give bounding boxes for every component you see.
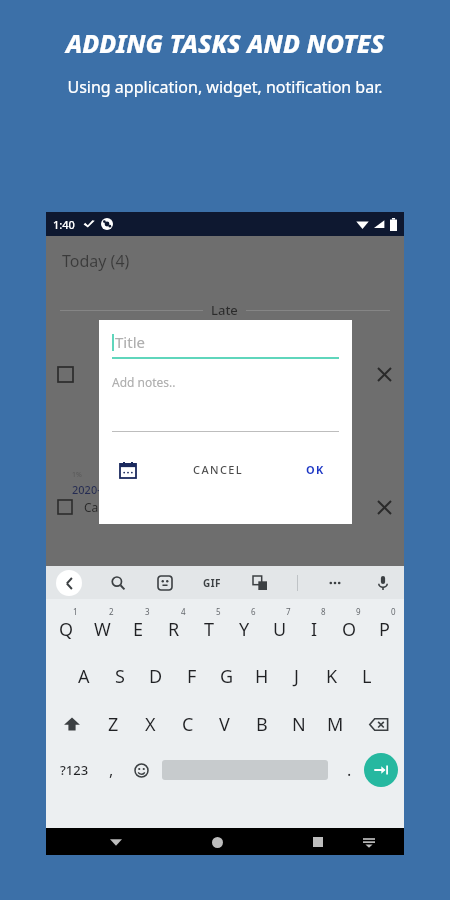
button[interactable]: Translate [249, 572, 271, 594]
staticText: Today (4) [62, 250, 130, 272]
button[interactable]: S [102, 655, 138, 697]
button[interactable]: A [66, 655, 102, 697]
staticText: N [292, 712, 306, 737]
button[interactable]: X [132, 703, 169, 745]
button[interactable]: . [336, 749, 362, 791]
staticText: GIF [203, 576, 221, 590]
button[interactable]: E [120, 603, 156, 649]
button[interactable]: Q [48, 603, 84, 649]
staticText: ?123 [60, 761, 89, 779]
staticText: . [347, 759, 352, 781]
staticText: 3 [145, 606, 150, 617]
staticText: 7 [286, 606, 291, 617]
staticText: 2020-02-10 Mon 18:00 [72, 482, 187, 497]
staticText: 8 [321, 606, 326, 617]
button[interactable]: N [280, 703, 317, 745]
staticText: Z [108, 712, 119, 737]
button[interactable]: Emoji [126, 749, 156, 791]
staticText: V [219, 712, 230, 737]
button[interactable]: Voice input [372, 572, 394, 594]
button[interactable]: M [317, 703, 354, 745]
button[interactable]: H [244, 655, 279, 697]
button[interactable]: T [192, 603, 227, 649]
staticText: J [294, 664, 299, 689]
staticText: I [311, 617, 318, 642]
button[interactable]: U [262, 603, 297, 649]
staticText: 6 [251, 606, 256, 617]
button[interactable]: ?123 [52, 749, 96, 791]
button[interactable]: C [169, 703, 206, 745]
staticText: CANCEL [193, 462, 244, 477]
staticText: Carbonara reciepe [84, 499, 188, 515]
staticText: Using application, widget, notification … [58, 76, 392, 98]
button[interactable]: J [279, 655, 314, 697]
staticText: Title [115, 332, 145, 352]
button[interactable]: V [206, 703, 243, 745]
staticText: 4 [181, 606, 186, 617]
button[interactable]: P [367, 603, 402, 649]
button[interactable]: Recent apps [307, 831, 329, 853]
staticText: H [255, 664, 269, 689]
staticText: X [145, 712, 156, 737]
button[interactable]: Home [206, 831, 228, 853]
staticText: 2 [109, 606, 114, 617]
button[interactable]: , [96, 749, 126, 791]
button[interactable]: W [84, 603, 120, 649]
staticText: P [379, 617, 390, 642]
staticText: S [115, 664, 125, 689]
staticText: A [78, 664, 90, 689]
button[interactable]: O [332, 603, 367, 649]
button[interactable]: Hide keyboard [105, 831, 127, 853]
staticText: Y [239, 617, 250, 642]
button[interactable]: OK [298, 458, 333, 481]
staticText: W [94, 617, 111, 642]
button[interactable]: G [209, 655, 244, 697]
staticText: R [168, 617, 180, 642]
staticText: O [342, 617, 357, 642]
staticText: Late [211, 301, 238, 319]
staticText: T [204, 617, 215, 642]
button[interactable]: Y [227, 603, 262, 649]
staticText: 0 [391, 606, 396, 617]
staticText: , [109, 759, 114, 781]
button[interactable]: L [349, 655, 384, 697]
staticText: ADDING TASKS AND NOTES [10, 26, 440, 60]
staticText: Q [59, 617, 74, 642]
button[interactable]: Backspace [354, 703, 402, 745]
button[interactable]: K [314, 655, 349, 697]
button[interactable]: Z [95, 703, 132, 745]
button[interactable]: Enter [364, 753, 398, 787]
staticText: 1% [72, 470, 82, 480]
staticText: OK [306, 462, 325, 477]
staticText: C [182, 712, 194, 737]
button[interactable]: CANCEL [185, 458, 252, 481]
button[interactable]: Set date [117, 459, 139, 481]
staticText: 9 [356, 606, 361, 617]
button[interactable]: Back [56, 570, 82, 596]
staticText: F [187, 664, 197, 689]
staticText: 1 [73, 606, 78, 617]
button[interactable]: F [174, 655, 209, 697]
staticText: D [149, 664, 163, 689]
staticText: 5 [216, 606, 221, 617]
button[interactable]: B [243, 703, 280, 745]
button[interactable]: Stickers [154, 572, 176, 594]
button[interactable]: Switch keyboard [358, 831, 380, 853]
button[interactable]: D [138, 655, 174, 697]
staticText: B [256, 712, 268, 737]
staticText: L [362, 664, 372, 689]
staticText: G [220, 664, 234, 689]
button[interactable]: R [156, 603, 192, 649]
staticText: K [326, 664, 338, 689]
button[interactable]: GIF [201, 574, 223, 592]
button[interactable]: Shift [48, 703, 95, 745]
staticText: M [327, 712, 344, 737]
staticText: E [133, 617, 144, 642]
button[interactable]: Search [107, 572, 129, 594]
button[interactable]: I [297, 603, 332, 649]
button[interactable]: More options [324, 572, 346, 594]
staticText: Add notes.. [112, 374, 176, 390]
staticText: U [273, 617, 287, 642]
staticText: 1:40 [53, 217, 75, 232]
